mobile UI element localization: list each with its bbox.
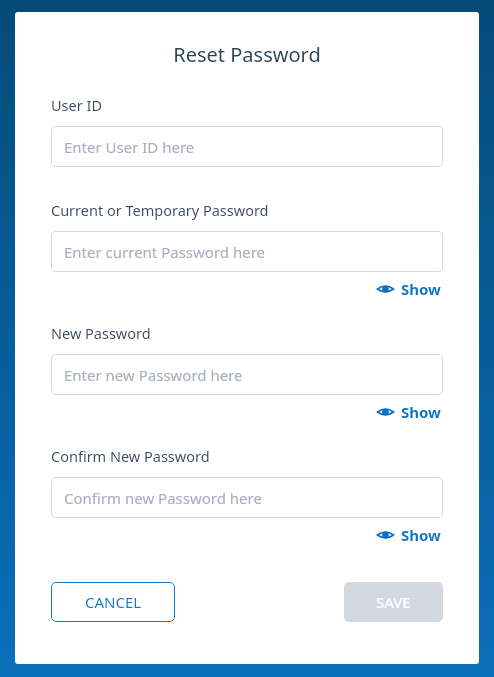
staticText: Confirm New Password — [51, 446, 210, 466]
button[interactable]: Confirm new Password here — [51, 477, 443, 518]
staticText: Reset Password — [51, 41, 443, 68]
button[interactable]: Show — [375, 399, 443, 425]
staticText: Enter User ID here — [64, 137, 195, 157]
staticText: New Password — [51, 323, 151, 343]
button[interactable]: Enter new Password here — [51, 354, 443, 395]
staticText: Show — [401, 279, 441, 299]
staticText: SAVE — [376, 592, 411, 612]
button[interactable]: CANCEL — [51, 582, 175, 622]
staticText: Enter new Password here — [64, 365, 243, 385]
staticText: Confirm new Password here — [64, 488, 262, 508]
staticText: User ID — [51, 95, 102, 115]
button[interactable]: SAVE — [344, 582, 443, 622]
staticText: Show — [401, 525, 441, 545]
button[interactable]: Show — [375, 522, 443, 548]
button[interactable]: Enter User ID here — [51, 126, 443, 167]
staticText: Show — [401, 402, 441, 422]
staticText: Current or Temporary Password — [51, 200, 269, 220]
button[interactable]: Enter current Password here — [51, 231, 443, 272]
staticText: Enter current Password here — [64, 242, 266, 262]
button[interactable]: Show — [375, 276, 443, 302]
staticText: CANCEL — [85, 592, 142, 612]
